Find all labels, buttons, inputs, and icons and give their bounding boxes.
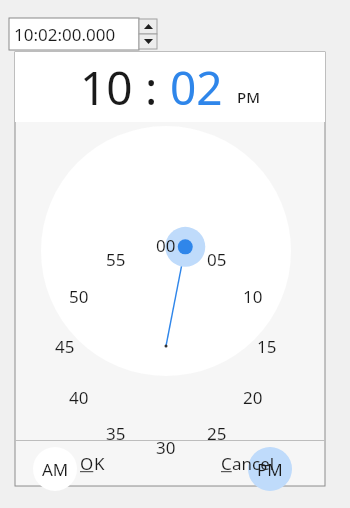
- staticText: 05: [207, 248, 227, 271]
- staticText: :: [133, 56, 170, 119]
- button[interactable]: 20: [237, 385, 269, 409]
- button[interactable]: 10:02:00.000: [9, 18, 139, 50]
- button[interactable]: 50: [63, 284, 95, 308]
- button[interactable]: 05: [201, 247, 233, 271]
- staticText: 40: [69, 386, 89, 409]
- staticText: 10:02:00.000: [14, 23, 116, 46]
- button[interactable]: 45: [49, 334, 81, 358]
- staticText: 15: [257, 335, 277, 358]
- staticText: K: [94, 452, 105, 475]
- button[interactable]: 15: [251, 334, 283, 358]
- staticText: 25: [207, 422, 227, 445]
- button[interactable]: 55: [100, 247, 132, 271]
- staticText: 20: [243, 386, 263, 409]
- button[interactable]: 10: [237, 284, 269, 308]
- staticText: 35: [106, 422, 126, 445]
- button[interactable]: PM: [248, 447, 292, 491]
- button[interactable]: C: [170, 441, 325, 486]
- staticText: 45: [55, 335, 75, 358]
- button[interactable]: AM: [33, 447, 77, 491]
- staticText: ancel: [232, 452, 275, 475]
- staticText: 10: [243, 285, 263, 308]
- staticText: AM: [42, 458, 69, 481]
- button[interactable]: 00: [150, 233, 182, 257]
- button[interactable]: [41, 126, 291, 376]
- button[interactable]: 35: [100, 421, 132, 445]
- button[interactable]: 02: [170, 56, 223, 119]
- staticText: 00: [156, 234, 176, 257]
- staticText: O: [80, 452, 94, 475]
- button[interactable]: 25: [201, 421, 233, 445]
- button[interactable]: PM: [237, 87, 260, 107]
- button[interactable]: 40: [63, 385, 95, 409]
- staticText: 30: [156, 436, 176, 459]
- button[interactable]: Decrease value: [139, 34, 157, 49]
- staticText: C: [221, 452, 232, 475]
- button[interactable]: Increase value: [139, 19, 157, 34]
- button[interactable]: 10: [80, 56, 133, 119]
- staticText: 50: [69, 285, 89, 308]
- button[interactable]: O: [15, 441, 170, 486]
- button[interactable]: 30: [150, 435, 182, 459]
- staticText: PM: [237, 87, 260, 107]
- staticText: 55: [106, 248, 126, 271]
- staticText: PM: [257, 458, 283, 481]
